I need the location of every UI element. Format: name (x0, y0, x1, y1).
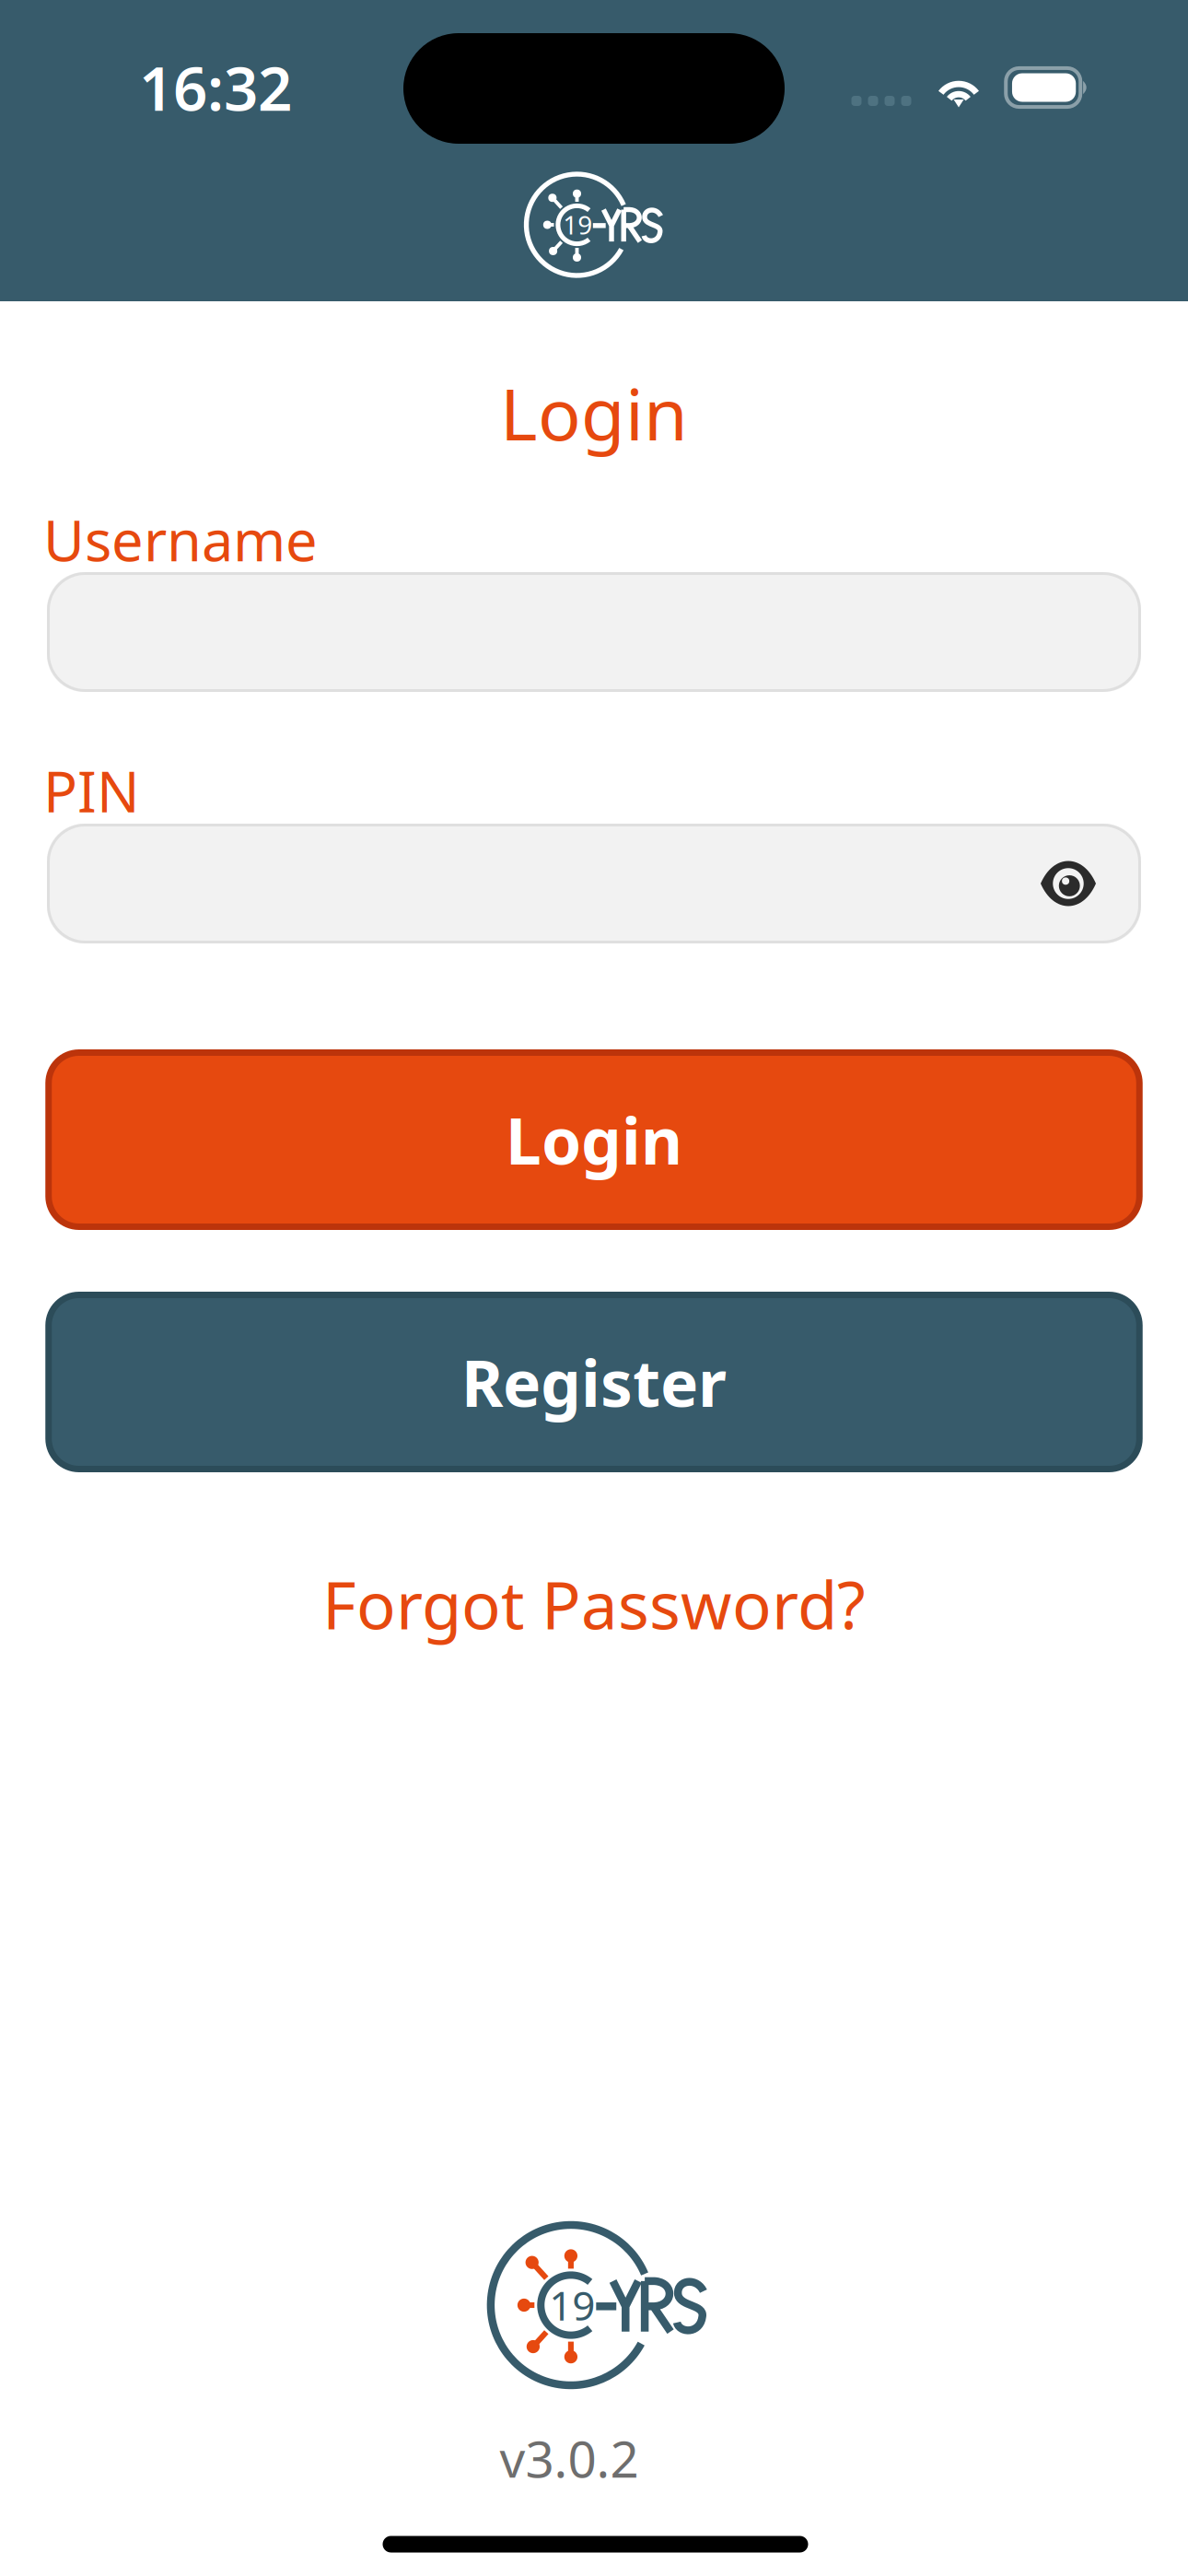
button[interactable]: Show PIN (996, 824, 1141, 943)
staticText: v3.0.2 (500, 2425, 639, 2492)
button[interactable]: PIN (47, 824, 1141, 943)
staticText: PIN (43, 753, 140, 828)
staticText: Forgot Password? (322, 1561, 866, 1647)
button[interactable]: Forgot Password? (300, 1546, 888, 1662)
button[interactable]: Username (47, 572, 1141, 692)
staticText: Username (43, 502, 318, 577)
staticText: Login (500, 365, 688, 460)
staticText: Login (506, 1097, 682, 1182)
staticText: 19 (549, 2278, 595, 2332)
button[interactable]: Login (49, 1053, 1139, 1227)
staticText: Register (461, 1340, 727, 1424)
button[interactable]: Register (49, 1295, 1139, 1469)
staticText: 19 (563, 207, 592, 242)
staticText: 16:32 (139, 48, 292, 128)
